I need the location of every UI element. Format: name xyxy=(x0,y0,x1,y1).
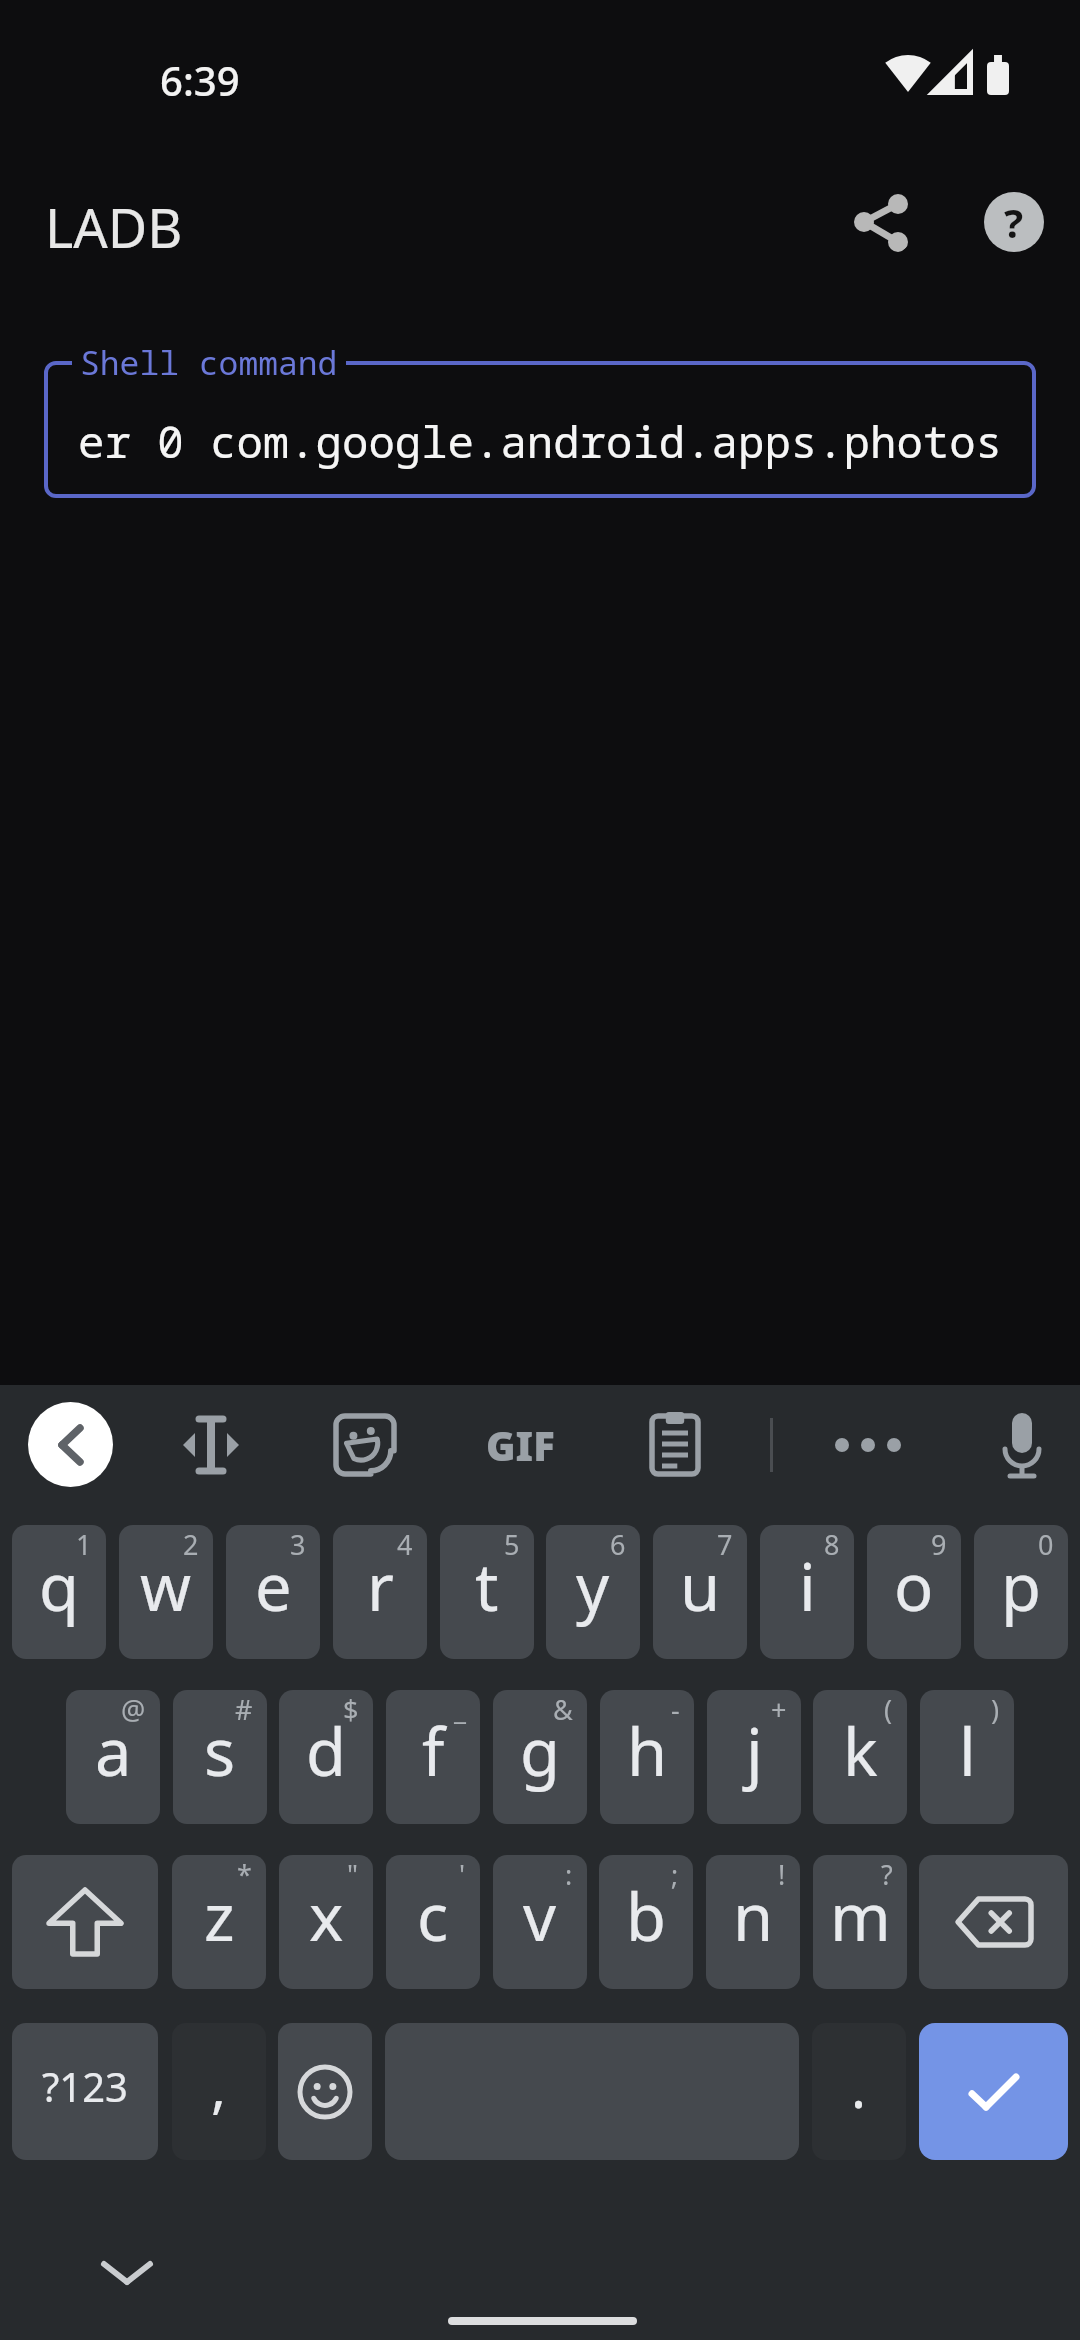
staticText: ? xyxy=(1004,195,1024,249)
button[interactable]: l xyxy=(920,1690,1014,1824)
staticText: Shell command xyxy=(80,340,338,385)
button[interactable] xyxy=(330,1410,400,1480)
button[interactable]: j xyxy=(707,1690,801,1824)
staticText: r xyxy=(367,1542,394,1631)
staticText: . xyxy=(851,2048,867,2124)
button[interactable] xyxy=(833,1410,903,1480)
staticText: 0 xyxy=(1038,1526,1054,1563)
button[interactable]: b xyxy=(599,1855,693,1989)
button[interactable] xyxy=(176,1410,246,1480)
staticText: e xyxy=(255,1542,292,1631)
staticText: + xyxy=(771,1691,787,1728)
staticText: a xyxy=(95,1707,132,1796)
staticText: o xyxy=(894,1542,934,1631)
button[interactable]: m xyxy=(813,1855,907,1989)
staticText: er 0 com.google.android.apps.photos xyxy=(78,411,1002,471)
button[interactable]: e xyxy=(226,1525,320,1659)
staticText: v xyxy=(523,1872,557,1961)
button[interactable]: GIF xyxy=(470,1410,570,1480)
staticText: , xyxy=(211,2048,227,2124)
staticText: u xyxy=(680,1542,721,1631)
staticText: 8 xyxy=(824,1526,840,1563)
staticText: ( xyxy=(884,1691,893,1728)
button[interactable]: o xyxy=(867,1525,961,1659)
staticText: f xyxy=(422,1707,445,1796)
staticText: @ xyxy=(121,1691,146,1728)
staticText: s xyxy=(204,1707,236,1796)
staticText: # xyxy=(235,1691,253,1728)
button[interactable]: u xyxy=(653,1525,747,1659)
staticText: 6 xyxy=(610,1526,626,1563)
staticText: 7 xyxy=(717,1526,733,1563)
button[interactable]: ?123 xyxy=(12,2023,158,2160)
button[interactable]: er 0 com.google.android.apps.photos xyxy=(44,361,1036,498)
staticText: n xyxy=(733,1872,774,1961)
staticText: ?123 xyxy=(42,2059,128,2113)
staticText: 9 xyxy=(931,1526,947,1563)
button[interactable]: n xyxy=(706,1855,800,1989)
button[interactable]: w xyxy=(119,1525,213,1659)
staticText: i xyxy=(799,1542,816,1631)
button[interactable]: c xyxy=(386,1855,480,1989)
staticText: * xyxy=(237,1856,252,1893)
staticText: ' xyxy=(459,1856,466,1893)
button[interactable]: x xyxy=(279,1855,373,1989)
button[interactable]: f xyxy=(386,1690,480,1824)
staticText: p xyxy=(1001,1542,1041,1631)
button[interactable] xyxy=(987,1410,1057,1480)
staticText: h xyxy=(627,1707,668,1796)
button[interactable]: s xyxy=(173,1690,267,1824)
staticText: ! xyxy=(778,1856,786,1893)
button[interactable] xyxy=(28,1402,113,1487)
staticText: LADB xyxy=(45,190,183,264)
button[interactable]: i xyxy=(760,1525,854,1659)
staticText: _ xyxy=(454,1691,466,1728)
staticText: ? xyxy=(881,1856,893,1893)
staticText: t xyxy=(475,1542,499,1631)
staticText: " xyxy=(347,1856,359,1893)
button[interactable] xyxy=(96,2250,158,2296)
button[interactable]: g xyxy=(493,1690,587,1824)
button[interactable] xyxy=(12,1855,158,1989)
button[interactable]: r xyxy=(333,1525,427,1659)
button[interactable]: h xyxy=(600,1690,694,1824)
button[interactable] xyxy=(919,2023,1068,2160)
staticText: c xyxy=(417,1872,449,1961)
button[interactable] xyxy=(640,1410,710,1480)
button[interactable]: v xyxy=(493,1855,587,1989)
staticText: q xyxy=(39,1542,79,1631)
button[interactable]: , xyxy=(172,2023,266,2160)
button[interactable]: . xyxy=(812,2023,906,2160)
button[interactable]: ? xyxy=(984,192,1044,252)
button[interactable]: d xyxy=(279,1690,373,1824)
staticText: & xyxy=(553,1691,573,1728)
button[interactable]: k xyxy=(813,1690,907,1824)
button[interactable] xyxy=(845,186,917,258)
staticText: y xyxy=(576,1542,610,1631)
button[interactable]: a xyxy=(66,1690,160,1824)
staticText: 2 xyxy=(183,1526,199,1563)
staticText: 6:39 xyxy=(160,53,240,107)
staticText: ; xyxy=(671,1856,679,1893)
button[interactable]: y xyxy=(546,1525,640,1659)
staticText: ) xyxy=(991,1691,1000,1728)
staticText: $ xyxy=(343,1691,359,1728)
staticText: 4 xyxy=(397,1526,413,1563)
button[interactable]: p xyxy=(974,1525,1068,1659)
staticText: w xyxy=(140,1542,192,1631)
staticText: 1 xyxy=(76,1526,92,1563)
staticText: m xyxy=(830,1872,891,1961)
staticText: 5 xyxy=(504,1526,520,1563)
staticText: b xyxy=(626,1872,666,1961)
button[interactable]: q xyxy=(12,1525,106,1659)
staticText: : xyxy=(565,1856,573,1893)
button[interactable] xyxy=(919,1855,1068,1989)
staticText: k xyxy=(843,1707,878,1796)
staticText: j xyxy=(746,1707,763,1796)
button[interactable]: z xyxy=(172,1855,266,1989)
button[interactable]: t xyxy=(440,1525,534,1659)
button[interactable] xyxy=(278,2023,372,2160)
staticText: z xyxy=(204,1872,235,1961)
staticText: 3 xyxy=(290,1526,306,1563)
